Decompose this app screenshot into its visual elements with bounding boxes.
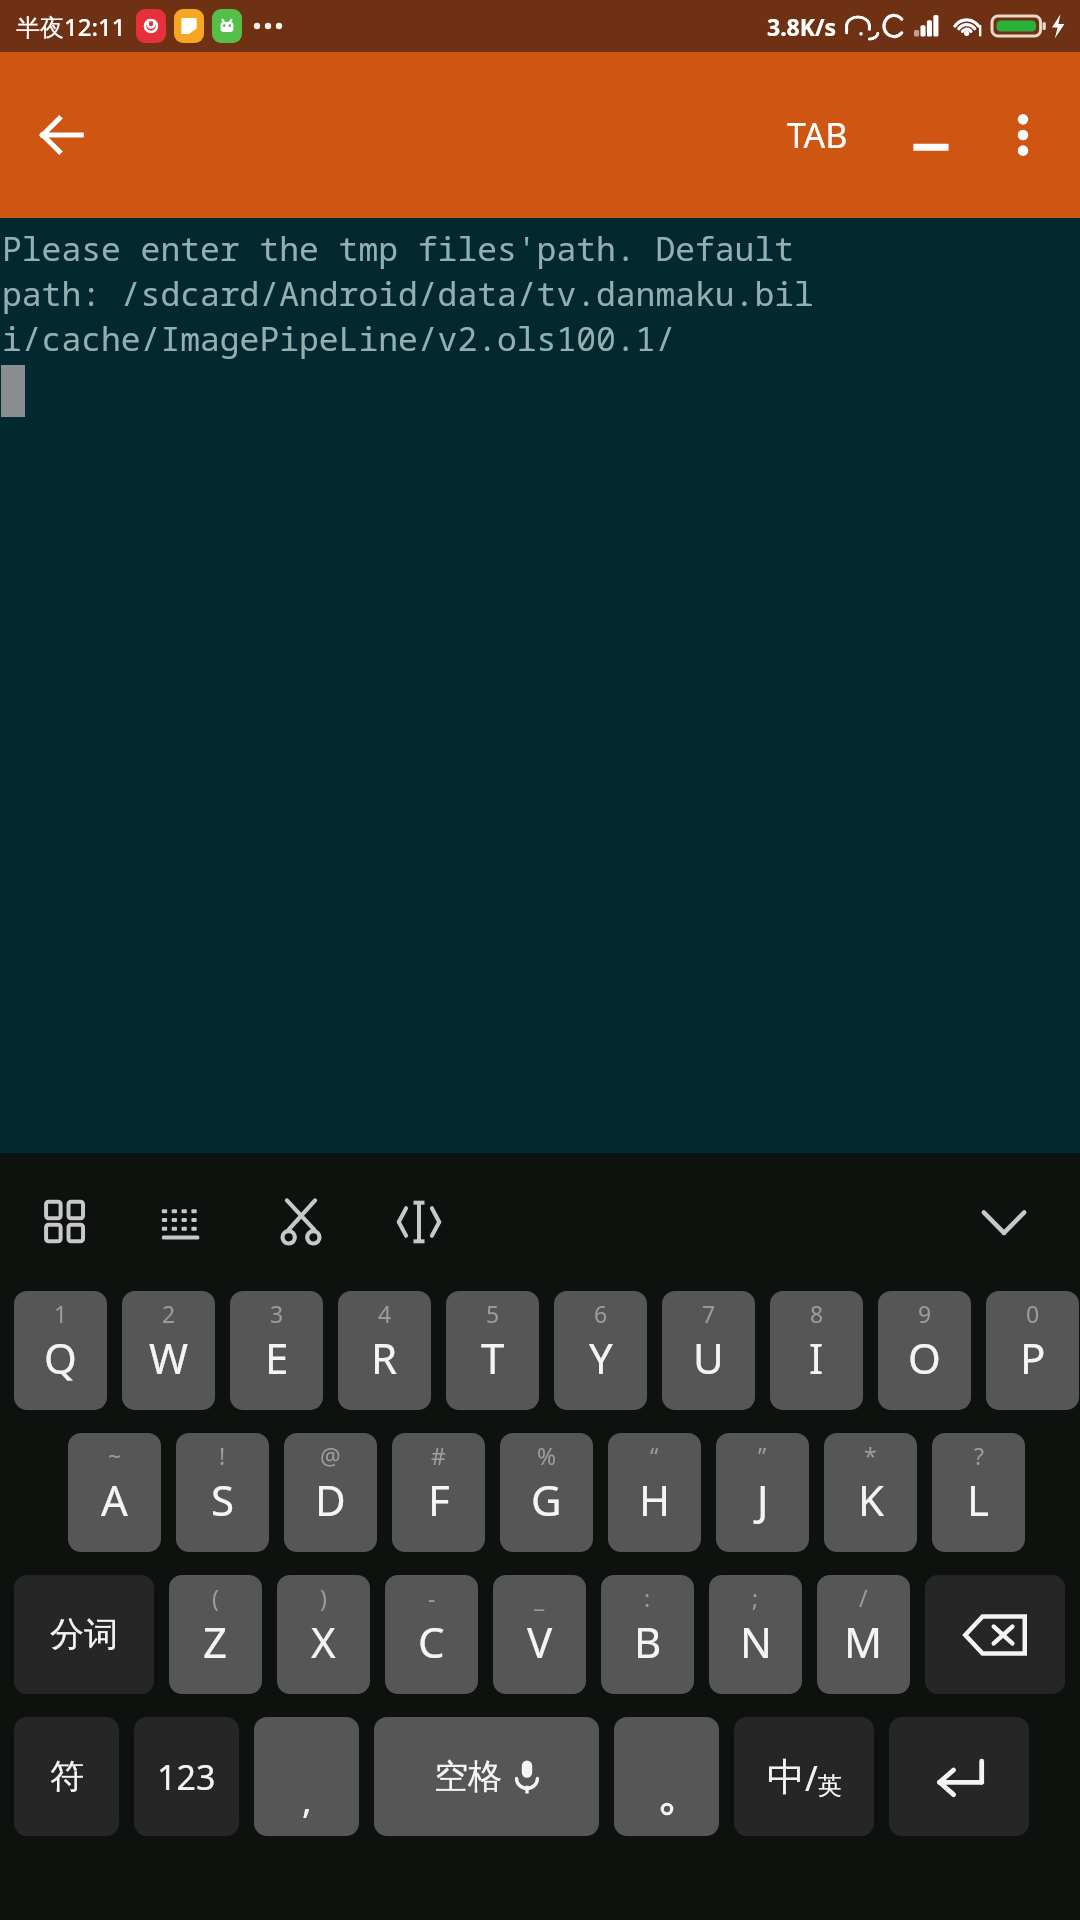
button[interactable]: # bbox=[392, 1433, 485, 1552]
button[interactable]: Keyboard bbox=[142, 1181, 224, 1263]
button[interactable]: 0 bbox=[986, 1291, 1079, 1410]
button[interactable] bbox=[614, 1717, 719, 1836]
staticText: M bbox=[844, 1613, 883, 1670]
button[interactable]: , bbox=[254, 1717, 359, 1836]
staticText: C bbox=[418, 1613, 445, 1670]
staticText: i/cache/ImagePipeLine/v2.ols100.1/ bbox=[2, 316, 676, 361]
staticText: R bbox=[371, 1329, 398, 1386]
button[interactable]: - bbox=[385, 1575, 478, 1694]
button[interactable]: ~ bbox=[68, 1433, 161, 1552]
button[interactable]: Move cursor bbox=[378, 1181, 460, 1263]
staticText: 3 bbox=[270, 1298, 284, 1329]
staticText: Z bbox=[203, 1613, 228, 1670]
staticText: 半夜12:11 bbox=[16, 10, 126, 43]
staticText: path: /sdcard/Android/data/tv.danmaku.bi… bbox=[2, 271, 814, 316]
button[interactable]: Enter bbox=[889, 1717, 1029, 1836]
staticText: 123 bbox=[157, 1754, 216, 1800]
staticText: U bbox=[693, 1329, 724, 1386]
staticText: @ bbox=[320, 1440, 341, 1471]
button[interactable]: 符 bbox=[14, 1717, 119, 1836]
button[interactable]: 空格 bbox=[374, 1717, 599, 1836]
button[interactable]: 3 bbox=[230, 1291, 323, 1410]
staticText: ) bbox=[320, 1582, 327, 1613]
button[interactable]: 9 bbox=[878, 1291, 971, 1410]
button[interactable]: 中 bbox=[734, 1717, 874, 1836]
staticText: S bbox=[211, 1471, 235, 1528]
button[interactable]: 123 bbox=[134, 1717, 239, 1836]
button[interactable]: TAB bbox=[773, 87, 862, 183]
staticText: V bbox=[527, 1613, 553, 1670]
staticText: ” bbox=[758, 1440, 767, 1471]
staticText: 3.8K/s bbox=[767, 11, 837, 42]
button[interactable]: 8 bbox=[770, 1291, 863, 1410]
staticText: 8 bbox=[810, 1298, 824, 1329]
staticText: ! bbox=[219, 1440, 226, 1471]
button[interactable]: % bbox=[500, 1433, 593, 1552]
staticText: ; bbox=[752, 1582, 759, 1613]
staticText: P bbox=[1020, 1329, 1046, 1386]
button[interactable]: Cut bbox=[260, 1181, 342, 1263]
button[interactable]: 4 bbox=[338, 1291, 431, 1410]
staticText: 2 bbox=[162, 1298, 176, 1329]
staticText: Q bbox=[44, 1329, 77, 1386]
staticText: , bbox=[302, 1775, 312, 1824]
staticText: A bbox=[101, 1471, 128, 1528]
staticText: W bbox=[149, 1329, 189, 1386]
button[interactable]: 2 bbox=[122, 1291, 215, 1410]
staticText: 5 bbox=[486, 1298, 500, 1329]
staticText: 分词 bbox=[50, 1613, 118, 1656]
button[interactable]: 7 bbox=[662, 1291, 755, 1410]
button[interactable]: * bbox=[824, 1433, 917, 1552]
staticText: _ bbox=[534, 1582, 545, 1613]
staticText: N bbox=[740, 1613, 772, 1670]
staticText: B bbox=[634, 1613, 662, 1670]
button[interactable]: Hide keyboard bbox=[962, 1180, 1046, 1264]
staticText: D bbox=[315, 1471, 346, 1528]
button[interactable]: “ bbox=[608, 1433, 701, 1552]
button[interactable]: _ bbox=[493, 1575, 586, 1694]
staticText: X bbox=[311, 1613, 336, 1670]
button[interactable]: ” bbox=[716, 1433, 809, 1552]
staticText: 0 bbox=[1026, 1298, 1040, 1329]
staticText: K bbox=[858, 1471, 884, 1528]
staticText: 1 bbox=[54, 1298, 68, 1329]
staticText: TAB bbox=[787, 112, 848, 158]
staticText: I bbox=[809, 1329, 824, 1386]
button[interactable]: 5 bbox=[446, 1291, 539, 1410]
button[interactable]: ; bbox=[709, 1575, 802, 1694]
button[interactable]: : bbox=[601, 1575, 694, 1694]
staticText: ? bbox=[974, 1440, 984, 1471]
button[interactable]: ( bbox=[169, 1575, 262, 1694]
staticText: # bbox=[431, 1440, 446, 1471]
staticText: J bbox=[757, 1471, 769, 1528]
staticText: 中 bbox=[767, 1753, 805, 1801]
staticText: 9 bbox=[918, 1298, 932, 1329]
button[interactable]: Back bbox=[24, 97, 100, 173]
staticText: : bbox=[644, 1582, 651, 1613]
button[interactable]: ! bbox=[176, 1433, 269, 1552]
button[interactable]: ) bbox=[277, 1575, 370, 1694]
staticText: 7 bbox=[702, 1298, 716, 1329]
staticText: H bbox=[639, 1471, 671, 1528]
button[interactable]: 1 bbox=[14, 1291, 107, 1410]
staticText: 英 bbox=[818, 1771, 842, 1801]
button[interactable]: / bbox=[817, 1575, 910, 1694]
button[interactable]: 6 bbox=[554, 1291, 647, 1410]
staticText: 空格 bbox=[434, 1755, 502, 1798]
staticText: Y bbox=[589, 1329, 613, 1386]
button[interactable]: @ bbox=[284, 1433, 377, 1552]
button[interactable]: Minimize bbox=[888, 92, 974, 178]
button[interactable]: Grid bbox=[24, 1181, 106, 1263]
button[interactable]: ? bbox=[932, 1433, 1025, 1552]
staticText: Please enter the tmp files'path. Default bbox=[2, 226, 794, 271]
button[interactable]: Backspace bbox=[925, 1575, 1065, 1694]
staticText: * bbox=[864, 1440, 877, 1471]
staticText: - bbox=[428, 1582, 436, 1613]
button[interactable]: More options bbox=[980, 92, 1066, 178]
staticText: G bbox=[531, 1471, 562, 1528]
staticText: / bbox=[859, 1582, 868, 1613]
staticText: 符 bbox=[50, 1755, 84, 1798]
staticText: 4 bbox=[378, 1298, 392, 1329]
staticText: L bbox=[967, 1471, 990, 1528]
button[interactable]: 分词 bbox=[14, 1575, 154, 1694]
